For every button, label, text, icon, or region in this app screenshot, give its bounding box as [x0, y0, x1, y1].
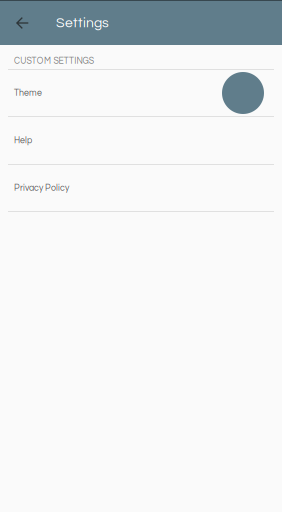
button[interactable]: Privacy Policy [0, 165, 282, 211]
staticText: Settings [56, 16, 109, 30]
button[interactable]: Theme [0, 70, 282, 116]
staticText: Theme [14, 88, 42, 98]
button[interactable]: Back [5, 1, 39, 45]
button[interactable]: Help [0, 117, 282, 164]
staticText: CUSTOM SETTINGS [14, 56, 94, 65]
staticText: Help [14, 136, 32, 145]
staticText: Privacy Policy [14, 183, 69, 193]
